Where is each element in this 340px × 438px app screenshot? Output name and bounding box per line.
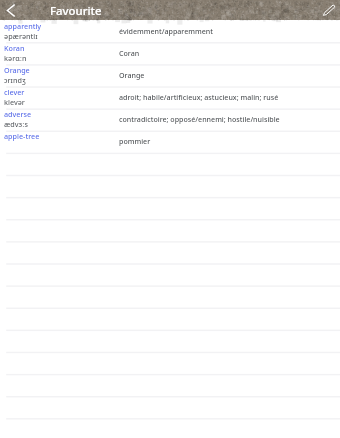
staticText: Favourite <box>50 3 102 19</box>
button[interactable]: Edit <box>316 0 340 20</box>
staticText: adverse <box>4 109 32 119</box>
staticText: apple-tree <box>4 131 40 141</box>
button[interactable]: Koran <box>0 42 340 64</box>
staticText: adroit; habile/artificieux; astucieux; m… <box>119 92 279 102</box>
staticText: Orange <box>4 65 30 75</box>
staticText: apparently <box>4 21 42 31</box>
staticText: əpærəntlɪ <box>4 31 38 41</box>
button[interactable]: adverse <box>0 108 340 130</box>
button[interactable]: Orange <box>0 64 340 86</box>
button[interactable]: apparently <box>0 20 340 42</box>
button[interactable]: Back <box>0 0 24 20</box>
staticText: clever <box>4 87 25 97</box>
staticText: Coran <box>119 48 140 58</box>
button[interactable]: clever <box>0 86 340 108</box>
staticText: kərɑːn <box>4 53 27 63</box>
staticText: évidemment/apparemment <box>119 26 213 36</box>
button[interactable]: apple-tree <box>0 130 340 152</box>
staticText: Koran <box>4 43 25 53</box>
staticText: Orange <box>119 70 145 80</box>
staticText: ædvɜːs <box>4 119 28 129</box>
staticText: contradictoire; opposé/ennemi; hostile/n… <box>119 114 280 124</box>
staticText: klevər <box>4 97 25 107</box>
staticText: ɔrɪndʒ <box>4 75 26 85</box>
staticText: pommier <box>119 136 151 146</box>
